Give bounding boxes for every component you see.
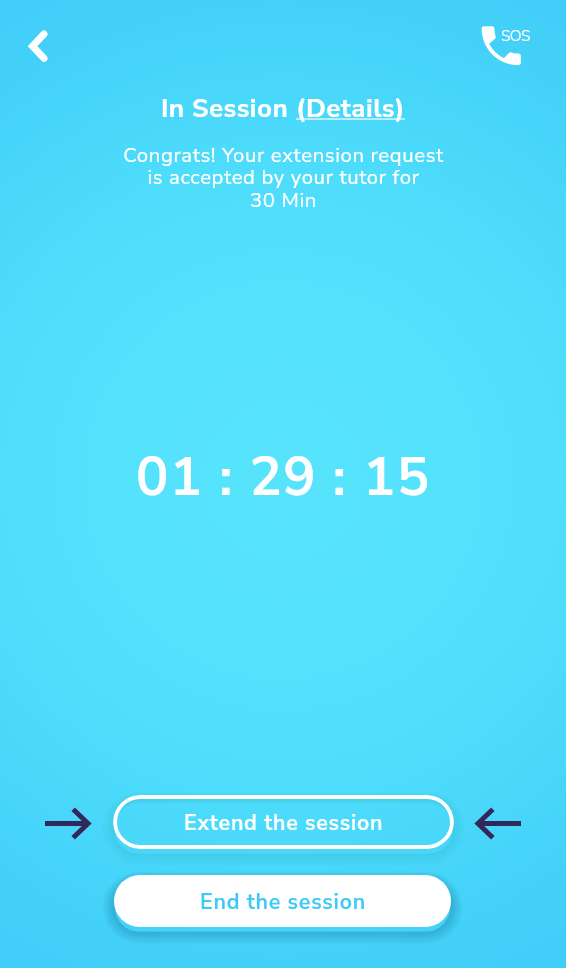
staticText: Extend the session [184,808,384,837]
button[interactable]: End the session [114,875,451,927]
button[interactable]: SOS emergency call [477,20,537,68]
button[interactable]: Back [14,22,62,70]
staticText: In Session [161,91,296,126]
staticText: 01 : 29 : 15 [136,440,431,514]
staticText: End the session [200,887,366,916]
button[interactable]: Extend the session [113,795,454,849]
staticText: SOS [501,25,530,46]
button[interactable]: (Details) [296,91,405,126]
staticText: Congrats! Your extension request is acce… [123,141,444,214]
